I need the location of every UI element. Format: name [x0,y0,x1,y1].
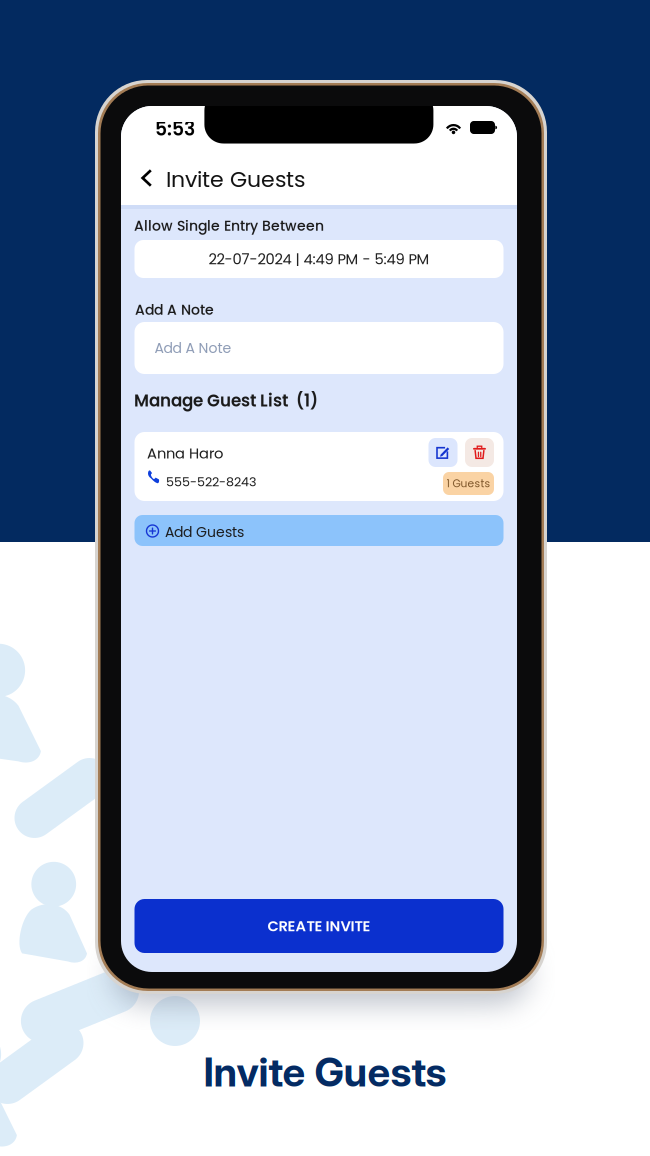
button[interactable]: Add Guests [134,515,503,546]
staticText: 22-07-2024 | 4:49 PM - 5:49 PM [208,249,429,269]
staticText: CREATE INVITE [267,916,370,936]
button[interactable]: Delete guest [465,438,494,467]
staticText: Add Guests [165,522,244,542]
button[interactable]: CREATE INVITE [134,899,503,953]
staticText: Invite Guests [166,164,305,195]
staticText: 1 Guests [446,476,490,491]
staticText: Anna Haro [147,443,223,463]
staticText: Add A Note [154,338,231,358]
staticText: Manage Guest List (1) [134,389,318,412]
button[interactable]: Edit guest [428,438,457,467]
staticText: Add A Note [135,300,214,320]
staticText: Allow Single Entry Between [134,216,324,236]
staticText: Invite Guests [203,1048,446,1096]
button[interactable]: Back [129,161,163,195]
staticText: 5:53 [155,116,195,142]
staticText: 555-522-8243 [166,473,256,491]
